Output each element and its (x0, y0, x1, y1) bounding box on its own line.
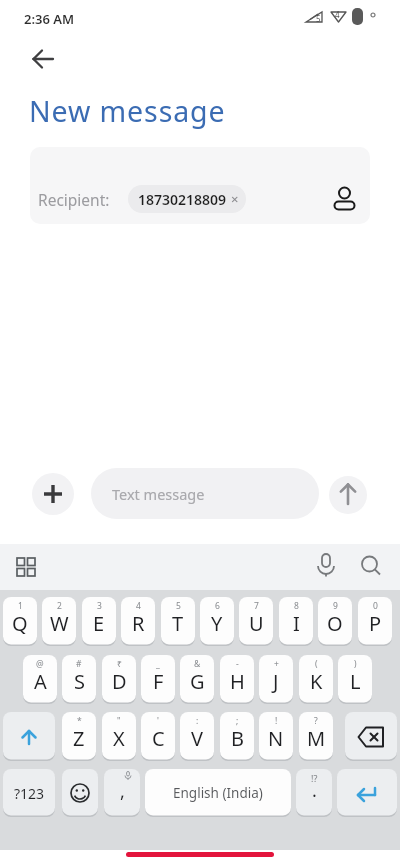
staticText: B (231, 725, 244, 752)
staticText: M (307, 725, 326, 752)
staticText: F (153, 668, 164, 695)
staticText: X (113, 725, 125, 752)
staticText: × (231, 190, 239, 208)
staticText: K (310, 668, 323, 695)
staticText: Recipient: (38, 189, 110, 210)
staticText: Y (211, 610, 223, 637)
button[interactable]: 9 (318, 597, 352, 646)
button[interactable]: English (India) (145, 769, 291, 817)
staticText: 4 (136, 600, 141, 612)
staticText: # (76, 658, 82, 670)
staticText: - (236, 658, 239, 670)
staticText: !? (311, 772, 318, 784)
staticText: 8 (294, 600, 299, 612)
button[interactable]: Text message (91, 468, 319, 519)
staticText: 3 (97, 600, 102, 612)
staticText: ' (157, 715, 159, 727)
button[interactable] (32, 473, 74, 515)
staticText: L (350, 668, 361, 695)
button[interactable]: 6 (200, 597, 234, 646)
button[interactable] (312, 552, 340, 580)
button[interactable]: 2 (42, 597, 76, 646)
staticText: 5 (316, 13, 321, 24)
staticText: C (152, 725, 165, 752)
button[interactable]: ?123 (3, 769, 55, 817)
button[interactable]: ( (299, 655, 333, 704)
button[interactable]: ; (220, 712, 254, 761)
staticText: P (369, 610, 382, 637)
button[interactable]: ! (259, 712, 293, 761)
button[interactable]: ? (299, 712, 333, 761)
button[interactable]: 8 (279, 597, 313, 646)
button[interactable]: * (62, 712, 96, 761)
button[interactable]: - (220, 655, 254, 704)
button[interactable]: 5 (161, 597, 195, 646)
button[interactable]: !? (296, 769, 332, 817)
staticText: _ (156, 658, 160, 670)
staticText: 0 (373, 600, 378, 612)
button[interactable] (330, 180, 360, 214)
staticText: W (50, 610, 69, 637)
staticText: G (190, 668, 205, 695)
staticText: ₹ (117, 658, 122, 670)
staticText: 7 (254, 600, 259, 612)
button[interactable] (62, 769, 98, 817)
staticText: U (249, 610, 264, 637)
button[interactable]: 7 (239, 597, 273, 646)
button[interactable]: @ (23, 655, 57, 704)
button[interactable] (12, 553, 40, 581)
staticText: I (293, 610, 300, 637)
staticText: ! (275, 715, 278, 727)
staticText: + (274, 658, 279, 670)
staticText: Z (73, 725, 85, 752)
button[interactable] (337, 769, 397, 817)
staticText: V (191, 725, 203, 752)
button[interactable]: _ (141, 655, 175, 704)
staticText: * (77, 715, 82, 727)
staticText: @ (36, 658, 44, 670)
staticText: 4 (335, 9, 340, 20)
button[interactable]: + (259, 655, 293, 704)
button[interactable]: : (180, 712, 214, 761)
button[interactable] (3, 712, 55, 761)
staticText: . (312, 778, 317, 803)
staticText: 2:36 AM (24, 10, 75, 28)
staticText: D (112, 668, 127, 695)
staticText: ; (236, 715, 239, 727)
button[interactable]: , (104, 769, 140, 817)
staticText: H (230, 668, 245, 695)
button[interactable]: ) (338, 655, 372, 704)
button[interactable] (329, 476, 367, 514)
button[interactable] (23, 39, 63, 79)
staticText: 18730218809 (138, 190, 227, 209)
staticText: J (273, 668, 279, 695)
staticText: 2 (57, 600, 62, 612)
button[interactable]: ₹ (102, 655, 136, 704)
staticText: , (120, 779, 125, 804)
staticText: : (196, 715, 199, 727)
button[interactable]: 3 (82, 597, 116, 646)
button[interactable]: & (180, 655, 214, 704)
button[interactable] (357, 552, 385, 580)
staticText: R (132, 610, 145, 637)
staticText: S (74, 668, 85, 695)
button[interactable]: 0 (358, 597, 392, 646)
staticText: Text message (112, 484, 205, 504)
button[interactable]: 18730218809 (128, 185, 246, 213)
staticText: O (327, 610, 343, 637)
staticText: ?123 (14, 784, 45, 803)
staticText: & (194, 658, 201, 670)
staticText: N (268, 725, 284, 752)
staticText: ? (314, 715, 318, 727)
button[interactable] (345, 712, 397, 761)
button[interactable]: ' (141, 712, 175, 761)
staticText: ( (315, 658, 318, 670)
staticText: E (93, 610, 105, 637)
button[interactable]: 1 (3, 597, 37, 646)
staticText: A (34, 668, 47, 695)
staticText: ) (354, 658, 357, 670)
staticText: 1 (18, 600, 23, 612)
button[interactable]: 4 (121, 597, 155, 646)
button[interactable]: # (62, 655, 96, 704)
button[interactable]: " (102, 712, 136, 761)
